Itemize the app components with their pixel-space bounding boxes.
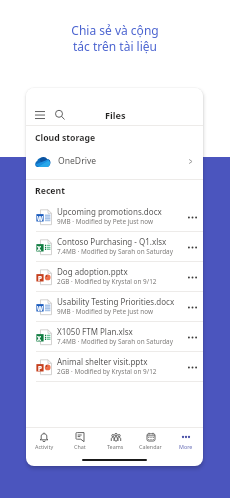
button[interactable]: More options [185,240,199,254]
staticText: X1050 FTM Plan.xlsx [57,326,133,337]
staticText: 7.4MB · Modified by Sarah on Saturday [57,247,173,256]
staticText: Calendar [139,443,162,450]
button[interactable]: X [26,322,203,352]
button[interactable]: More options [185,330,199,344]
staticText: 9MB · Modified by Pete just now [57,217,154,226]
staticText: Recent [35,185,65,197]
button[interactable]: More options [185,210,199,224]
staticText: P [38,364,42,371]
staticText: Contoso Purchasing - Q1.xlsx [57,236,167,247]
staticText: 2GB · Modified by Krystal on 9/12 [57,277,157,286]
button[interactable]: More options [185,300,199,314]
staticText: OneDrive [58,155,97,167]
staticText: W [37,214,43,221]
button[interactable]: W [26,202,203,232]
staticText: W [37,304,43,311]
staticText: Activity [35,443,54,450]
staticText: Files [105,109,126,122]
button[interactable]: X [26,232,203,262]
staticText: X [37,334,42,341]
button[interactable]: P [26,352,203,382]
button[interactable]: Activity [26,432,62,450]
staticText: 9MB · Modified by Pete just now [57,307,154,316]
button[interactable]: More options [185,360,199,374]
staticText: Upcoming promotions.docx [57,206,162,217]
staticText: Cloud storage [35,132,96,143]
staticText: Chat [74,443,86,450]
button[interactable]: OneDrive [26,143,203,179]
button[interactable]: More options [185,270,199,284]
staticText: P [38,274,42,281]
staticText: 2GB · Modified by Krystal on 9/12 [57,367,157,376]
button[interactable]: Teams [98,432,133,450]
button[interactable]: Search [53,108,67,122]
staticText: Usability Testing Priorities.docx [57,296,175,307]
staticText: More [179,443,193,450]
staticText: Teams [107,443,124,450]
staticText: Dog adoption.pptx [57,266,128,277]
staticText: Animal shelter visit.pptx [57,356,148,367]
button[interactable]: Menu [33,108,47,122]
staticText: X [37,244,42,251]
staticText: 7.4MB · Modified by Sarah on Saturday [57,337,173,346]
button[interactable]: More [168,432,203,450]
staticText: tác trên tài liệu [73,38,157,54]
staticText: Chia sẻ và cộng [71,22,159,38]
button[interactable]: Chat [62,432,98,450]
button[interactable]: P [26,262,203,292]
button[interactable]: Calendar [133,432,168,450]
button[interactable]: W [26,292,203,322]
